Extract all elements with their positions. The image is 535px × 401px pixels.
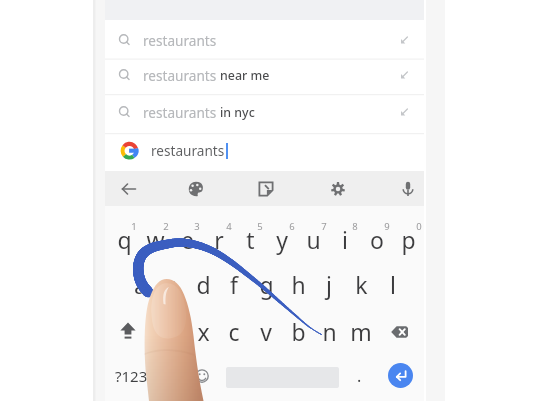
button[interactable]: a (124, 263, 156, 305)
button[interactable]: m (345, 310, 377, 352)
staticText: 6 (289, 220, 295, 233)
button[interactable]: z (155, 310, 187, 352)
staticText: z (166, 316, 177, 347)
staticText: p (401, 224, 416, 255)
button[interactable]: j (313, 263, 345, 305)
staticText: q (117, 224, 132, 255)
button[interactable]: f (218, 263, 250, 305)
button[interactable]: e (171, 218, 203, 260)
button[interactable]: restaurants (105, 23, 424, 57)
button[interactable]: Back (112, 172, 146, 206)
button[interactable]: i (329, 218, 361, 260)
button[interactable]: ?123 (108, 360, 168, 392)
button[interactable]: h (282, 263, 314, 305)
staticText: n (322, 316, 337, 347)
staticText: x (197, 316, 210, 347)
button[interactable]: q (108, 218, 140, 260)
button[interactable]: g (250, 263, 282, 305)
button[interactable]: Emoji (185, 359, 219, 393)
button[interactable]: k (345, 263, 377, 305)
button[interactable]: restaurants (105, 95, 424, 129)
staticText: restaurants (151, 141, 225, 160)
button[interactable]: n (313, 310, 345, 352)
staticText: d (196, 269, 211, 300)
button[interactable]: p (392, 218, 424, 260)
button[interactable]: v (250, 310, 282, 352)
staticText: l (390, 269, 396, 300)
staticText: o (370, 224, 384, 255)
button[interactable]: b (282, 310, 314, 352)
staticText: t (246, 224, 255, 255)
staticText: 2 (163, 220, 169, 233)
button[interactable]: Themes (179, 172, 213, 206)
button[interactable]: c (218, 310, 250, 352)
button[interactable]: restaurants (105, 58, 424, 92)
staticText: a (134, 269, 147, 300)
button[interactable]: y (266, 218, 298, 260)
staticText: f (230, 269, 238, 300)
staticText: u (306, 224, 321, 255)
staticText: g (259, 269, 274, 300)
staticText: y (276, 224, 288, 255)
staticText: near me (220, 67, 270, 84)
staticText: 3 (194, 220, 200, 233)
button[interactable]: restaurants (105, 135, 424, 172)
button[interactable]: r (203, 218, 235, 260)
staticText: restaurants (143, 103, 220, 122)
staticText: 7 (321, 220, 327, 233)
staticText: j (326, 269, 332, 300)
button[interactable]: s (155, 263, 187, 305)
staticText: m (350, 316, 372, 347)
staticText: 5 (257, 220, 263, 233)
staticText: b (291, 316, 306, 347)
staticText: w (146, 224, 165, 255)
staticText: 1 (131, 220, 137, 233)
staticText: 8 (352, 220, 358, 233)
staticText: restaurants (143, 31, 217, 50)
staticText: 9 (384, 220, 390, 233)
button[interactable]: l (377, 263, 409, 305)
staticText: ?123 (115, 366, 148, 386)
button[interactable]: Enter (388, 363, 413, 388)
button[interactable]: Settings (321, 172, 355, 206)
staticText: . (357, 365, 362, 387)
button[interactable]: t (234, 218, 266, 260)
button[interactable]: u (297, 218, 329, 260)
button[interactable]: d (187, 263, 219, 305)
staticText: c (228, 316, 240, 347)
staticText: v (260, 316, 272, 347)
button[interactable]: Backspace (383, 315, 417, 349)
button[interactable]: w (139, 218, 171, 260)
button[interactable]: . (343, 360, 375, 392)
button[interactable]: Shift (111, 314, 145, 348)
staticText: e (181, 224, 194, 255)
staticText: 0 (416, 220, 422, 233)
staticText: h (291, 269, 306, 300)
button[interactable]: x (187, 310, 219, 352)
staticText: in nyc (220, 104, 255, 121)
staticText: k (355, 269, 368, 300)
staticText: restaurants (143, 66, 220, 85)
staticText: s (165, 269, 177, 300)
button[interactable]: Voice input (391, 172, 425, 206)
staticText: r (214, 224, 224, 255)
staticText: i (342, 224, 348, 255)
staticText: 4 (226, 220, 232, 233)
button[interactable]: Stickers (249, 172, 283, 206)
button[interactable]: o (361, 218, 393, 260)
